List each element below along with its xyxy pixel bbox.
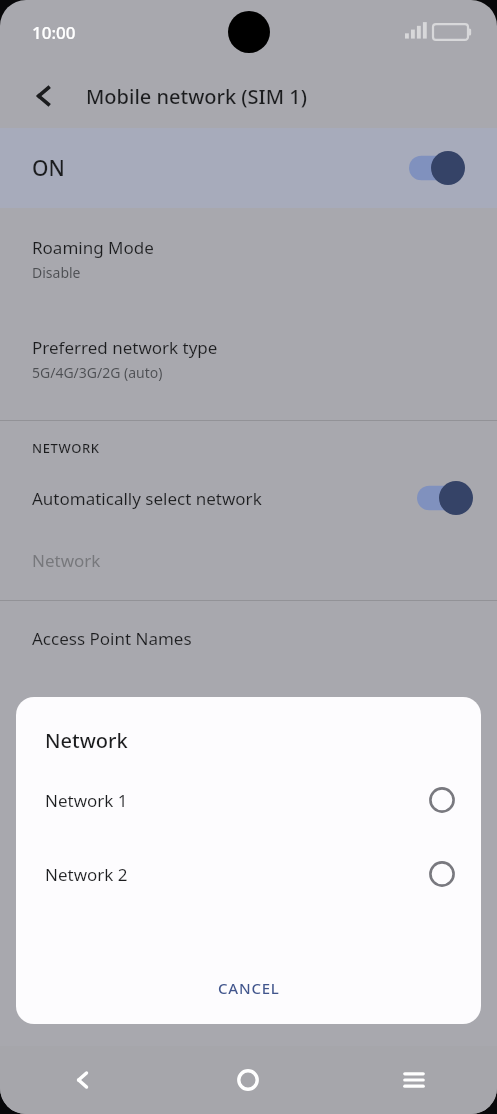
staticText: 10:00: [32, 21, 76, 44]
button[interactable]: Toggle: [409, 151, 465, 185]
staticText: NETWORK: [32, 439, 100, 457]
staticText: Disable: [32, 263, 81, 282]
button[interactable]: Back: [18, 70, 70, 122]
staticText: Roaming Mode: [32, 236, 154, 259]
staticText: Network: [45, 727, 128, 754]
button[interactable]: Home: [165, 1046, 331, 1114]
button[interactable]: Network 1: [16, 787, 481, 813]
button[interactable]: Network: [0, 549, 497, 572]
staticText: Access Point Names: [32, 627, 192, 650]
button[interactable]: Network 2: [16, 861, 481, 887]
button[interactable]: CANCEL: [200, 970, 298, 1006]
button[interactable]: Toggle: [417, 481, 473, 515]
button[interactable]: Automatically select network: [0, 471, 497, 525]
staticText: Network 2: [45, 863, 128, 886]
staticText: ON: [32, 154, 65, 183]
button[interactable]: ON: [0, 128, 497, 208]
button[interactable]: Preferred network type: [0, 320, 497, 398]
staticText: Preferred network type: [32, 336, 218, 359]
button[interactable]: Back: [0, 1046, 165, 1114]
staticText: 5G/4G/3G/2G (auto): [32, 363, 163, 382]
button[interactable]: Recent apps: [331, 1046, 497, 1114]
button[interactable]: Roaming Mode: [0, 220, 497, 298]
staticText: CANCEL: [218, 978, 280, 998]
staticText: Mobile network (SIM 1): [86, 83, 307, 110]
button[interactable]: Access Point Names: [0, 627, 497, 650]
staticText: Automatically select network: [32, 487, 262, 510]
staticText: Network 1: [45, 789, 128, 812]
staticText: Network: [32, 549, 101, 572]
